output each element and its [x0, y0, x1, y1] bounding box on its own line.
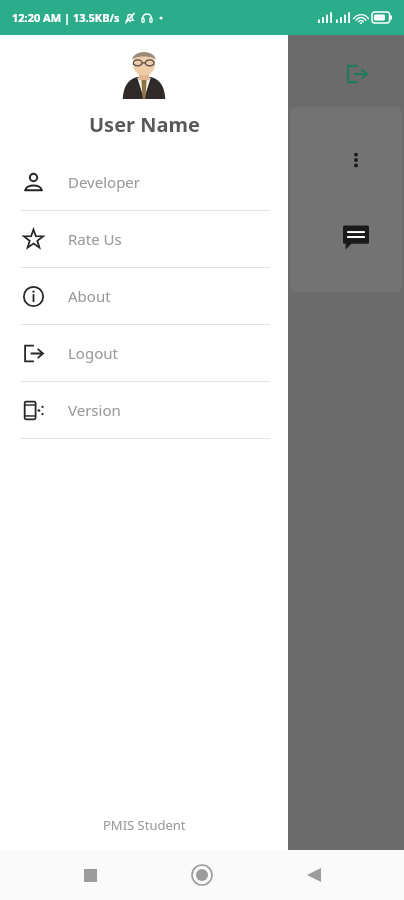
staticText: Rate Us [68, 229, 122, 249]
button[interactable]: Profile photo [116, 43, 172, 99]
staticText: Version [68, 400, 121, 420]
staticText: 12:20 AM | 13.5KB/s [12, 10, 120, 25]
staticText: User Name [89, 111, 200, 138]
button[interactable]: More options [336, 140, 376, 180]
button[interactable]: Home [180, 853, 224, 897]
button[interactable]: Back [292, 853, 336, 897]
button[interactable]: About [0, 268, 288, 324]
button[interactable]: Version [0, 382, 288, 438]
staticText: Logout [68, 343, 118, 363]
button[interactable]: Logout [338, 55, 376, 93]
button[interactable]: Rate Us [0, 211, 288, 267]
button[interactable]: Logout [0, 325, 288, 381]
button[interactable]: Developer [0, 154, 288, 210]
button[interactable]: Recent apps [68, 853, 112, 897]
staticText: PMIS Student [103, 816, 186, 834]
staticText: Developer [68, 172, 141, 192]
button[interactable]: Messages [332, 213, 380, 261]
staticText: About [68, 286, 111, 306]
